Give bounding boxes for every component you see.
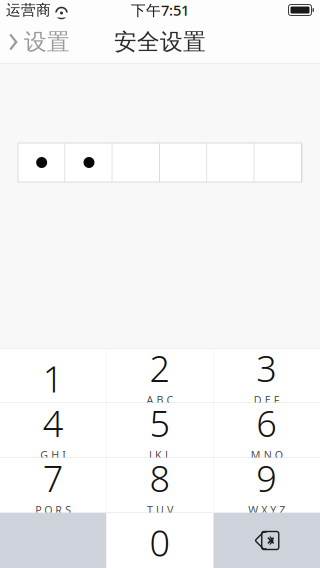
staticText: M N O — [251, 448, 283, 462]
button[interactable]: 8 — [106, 458, 213, 513]
button[interactable]: 1 — [0, 348, 106, 403]
staticText: W X Y Z — [248, 503, 285, 517]
staticText: 0 — [149, 519, 170, 566]
staticText: 7 — [43, 454, 64, 502]
staticText: J K L — [149, 448, 171, 462]
button[interactable]: Delete — [213, 513, 320, 568]
staticText: 9 — [256, 454, 277, 502]
staticText: 5 — [149, 399, 170, 447]
button[interactable]: 0 — [106, 513, 213, 568]
staticText: D E F — [254, 393, 280, 407]
staticText: 安全设置 — [114, 28, 206, 56]
staticText: P Q R S — [35, 503, 71, 517]
staticText: 6 — [256, 399, 277, 447]
button[interactable]: 3 — [213, 348, 320, 403]
button[interactable]: 设置 — [0, 20, 80, 64]
button[interactable]: 4 — [0, 403, 106, 458]
staticText: 1 — [43, 355, 64, 402]
button[interactable]: 2 — [106, 348, 213, 403]
staticText: 下午7:51 — [131, 0, 189, 20]
staticText: G H I — [40, 448, 66, 462]
button[interactable]: 5 — [106, 403, 213, 458]
staticText: 设置 — [24, 28, 70, 56]
staticText: 3 — [256, 344, 277, 392]
button[interactable]: 6 — [213, 403, 320, 458]
button[interactable]: 9 — [213, 458, 320, 513]
staticText: 2 — [149, 344, 170, 392]
staticText: 8 — [149, 454, 170, 502]
staticText: A B C — [146, 393, 173, 407]
button[interactable]: 7 — [0, 458, 106, 513]
staticText: T U V — [147, 503, 173, 517]
staticText: 4 — [43, 399, 64, 447]
staticText: 运营商 — [6, 1, 51, 19]
